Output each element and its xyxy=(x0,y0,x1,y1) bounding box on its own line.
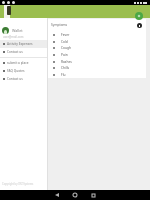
staticText: Contact us xyxy=(7,50,23,54)
staticText: Wallet xyxy=(12,28,23,33)
staticText: Chills xyxy=(61,66,70,70)
button[interactable]: Fever xyxy=(48,31,146,38)
staticText: Flu xyxy=(61,73,66,77)
staticText: Copyright by XYZ Systems xyxy=(2,182,34,186)
button[interactable]: Contact us xyxy=(0,75,48,83)
staticText: FAQ Quotes xyxy=(7,69,25,73)
button[interactable]: Back xyxy=(48,190,66,200)
button[interactable]: Cough xyxy=(48,44,146,51)
button[interactable]: Cold xyxy=(48,38,146,45)
button[interactable]: Flu xyxy=(48,71,146,78)
staticText: Cough xyxy=(61,46,71,50)
staticText: user@mail.com xyxy=(3,35,24,39)
button[interactable]: Home xyxy=(66,190,84,200)
button[interactable]: Add xyxy=(135,12,143,20)
button[interactable]: FAQ Quotes xyxy=(0,67,48,75)
staticText: Cold xyxy=(61,40,68,44)
button[interactable]: Pain xyxy=(48,51,146,58)
staticText: Pain xyxy=(61,53,68,57)
button[interactable]: submit a place xyxy=(0,59,48,67)
button[interactable]: Info xyxy=(137,23,142,28)
staticText: Contact us xyxy=(7,77,23,81)
staticText: Rashes xyxy=(61,60,72,64)
button[interactable]: Rashes xyxy=(48,58,146,65)
staticText: Symptoms xyxy=(51,23,68,27)
button[interactable]: Contact us xyxy=(0,48,48,56)
staticText: submit a place xyxy=(7,61,29,65)
button[interactable]: Open navigation menu xyxy=(4,5,10,18)
staticText: Fever xyxy=(61,33,70,37)
button[interactable]: Recents xyxy=(84,190,102,200)
staticText: Activity Expenses xyxy=(7,42,33,46)
button[interactable]: Chills xyxy=(48,64,146,71)
button[interactable]: Activity Expenses xyxy=(0,40,48,48)
